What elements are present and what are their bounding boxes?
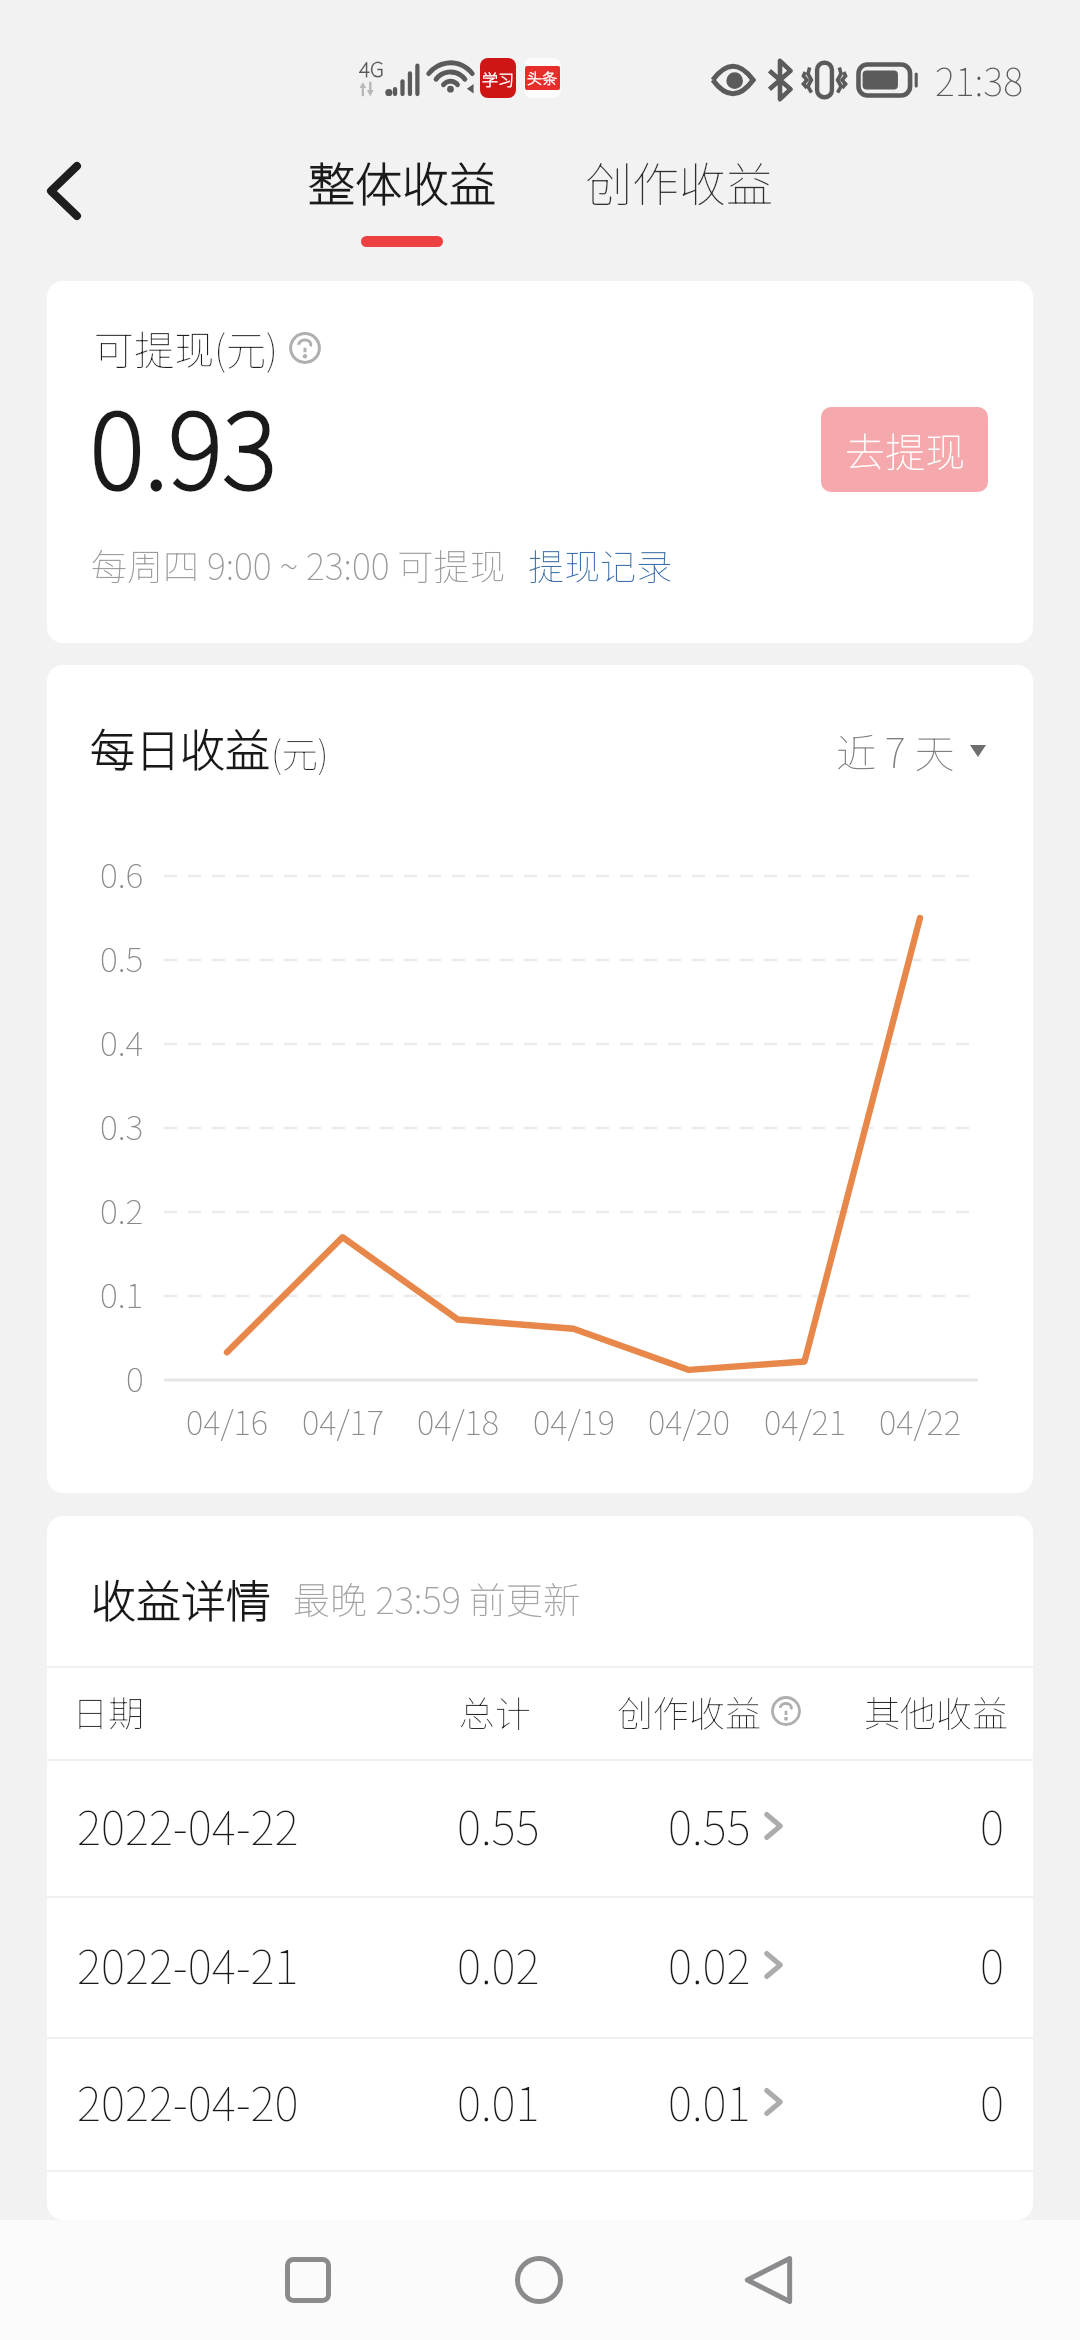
staticText: 0.2 bbox=[100, 1185, 144, 1229]
staticText: 0.55 bbox=[668, 1792, 751, 1859]
button[interactable]: 近 7 天 bbox=[836, 722, 986, 780]
staticText: 总计 bbox=[459, 1685, 532, 1737]
staticText: 04/20 bbox=[648, 1397, 730, 1445]
staticText: 04/22 bbox=[879, 1397, 961, 1445]
staticText: 其他收益 bbox=[864, 1685, 1009, 1737]
staticText: 0.01 bbox=[668, 2068, 751, 2135]
staticText: 04/16 bbox=[186, 1397, 268, 1445]
staticText: 收益详情 bbox=[91, 1566, 272, 1631]
staticText: 可提现(元) bbox=[94, 319, 278, 377]
staticText: 0.6 bbox=[100, 849, 144, 893]
staticText: 0 bbox=[126, 1353, 144, 1397]
button[interactable]: 创作收益 bbox=[568, 134, 790, 274]
staticText: 0.55 bbox=[457, 1792, 540, 1859]
button[interactable]: 2022-04-20 bbox=[47, 2039, 1033, 2170]
staticText: 04/17 bbox=[302, 1397, 384, 1445]
staticText: 创作收益 bbox=[568, 147, 790, 215]
button[interactable]: 提现记录 bbox=[528, 538, 673, 590]
staticText: 每日收益 bbox=[90, 715, 271, 780]
staticText: 0 bbox=[980, 1792, 1004, 1859]
button[interactable]: What is creation income? bbox=[771, 1696, 801, 1726]
staticText: 04/18 bbox=[417, 1397, 499, 1445]
staticText: 学习 bbox=[482, 67, 515, 90]
button[interactable]: Home bbox=[461, 2220, 617, 2340]
staticText: 2022-04-22 bbox=[77, 1792, 299, 1859]
staticText: 4G bbox=[359, 53, 384, 83]
button[interactable]: What is withdrawable balance? bbox=[289, 332, 321, 364]
staticText: 去提现 bbox=[845, 421, 965, 479]
staticText: 0.1 bbox=[100, 1269, 144, 1313]
staticText: 整体收益 bbox=[291, 147, 513, 215]
staticText: 0.93 bbox=[90, 368, 277, 519]
staticText: 头条 bbox=[527, 67, 558, 89]
staticText: 21:38 bbox=[935, 52, 1023, 107]
staticText: 2022-04-20 bbox=[77, 2068, 299, 2135]
button[interactable]: 整体收益 bbox=[291, 134, 513, 274]
staticText: 日期 bbox=[72, 1685, 145, 1737]
staticText: 0.01 bbox=[457, 2068, 540, 2135]
staticText: 04/21 bbox=[764, 1397, 846, 1445]
staticText: 近 7 天 bbox=[836, 722, 955, 780]
staticText: (元) bbox=[271, 726, 329, 778]
staticText: 2022-04-21 bbox=[77, 1931, 299, 1998]
staticText: 0.4 bbox=[100, 1017, 144, 1061]
staticText: 0.5 bbox=[100, 933, 144, 977]
staticText: 每周四 9:00 ~ 23:00 可提现 bbox=[91, 538, 506, 590]
staticText: 创作收益 bbox=[617, 1685, 762, 1737]
button[interactable]: Back bbox=[690, 2220, 846, 2340]
button[interactable]: 去提现 bbox=[821, 407, 988, 492]
button[interactable]: Back bbox=[16, 121, 112, 261]
staticText: 04/19 bbox=[533, 1397, 615, 1445]
staticText: 0.3 bbox=[100, 1101, 144, 1145]
button[interactable]: 2022-04-21 bbox=[47, 1898, 1033, 2037]
staticText: 0.02 bbox=[668, 1931, 751, 1998]
staticText: 提现记录 bbox=[528, 538, 673, 590]
staticText: 0 bbox=[980, 1931, 1004, 1998]
staticText: 0 bbox=[980, 2068, 1004, 2135]
button[interactable]: 2022-04-22 bbox=[47, 1761, 1033, 1896]
button[interactable]: Recent apps bbox=[230, 2220, 386, 2340]
staticText: 0.02 bbox=[457, 1931, 540, 1998]
staticText: 最晚 23:59 前更新 bbox=[293, 1571, 580, 1625]
